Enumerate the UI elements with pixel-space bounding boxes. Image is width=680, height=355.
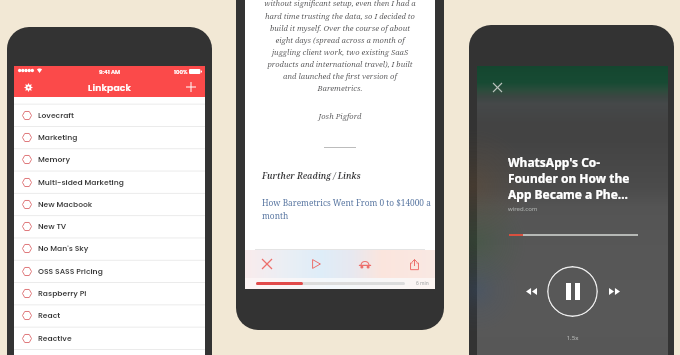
button[interactable]: Add bbox=[183, 79, 199, 95]
button[interactable]: Close bbox=[487, 77, 507, 97]
staticText: Marketing bbox=[38, 132, 78, 143]
button[interactable]: Close bbox=[256, 253, 278, 275]
button[interactable]: Car mode bbox=[354, 253, 376, 275]
staticText: Reactive bbox=[38, 333, 72, 344]
button[interactable]: Recipes bbox=[14, 349, 205, 355]
staticText: No Man's Sky bbox=[38, 243, 89, 254]
staticText: React bbox=[38, 310, 61, 321]
staticText: 6 min bbox=[416, 280, 429, 287]
button[interactable]: Reactive bbox=[14, 327, 205, 349]
button[interactable]: How Baremetrics Went From 0 to $14000 a … bbox=[262, 197, 431, 222]
staticText: New TV bbox=[38, 221, 67, 232]
button[interactable]: Pause bbox=[547, 266, 598, 317]
staticText: WhatsApp's Co- Founder on How the App Be… bbox=[508, 154, 630, 202]
staticText: Josh Pigford bbox=[245, 111, 435, 121]
staticText: 9:41 AM bbox=[99, 68, 121, 76]
button[interactable]: Raspberry Pi bbox=[14, 282, 205, 304]
staticText: Multi-sided Marketing bbox=[38, 177, 124, 188]
button[interactable]: Rewind bbox=[520, 280, 542, 302]
button[interactable]: No Man's Sky bbox=[14, 237, 205, 259]
button[interactable]: Play bbox=[305, 253, 327, 275]
button[interactable]: Fast forward bbox=[603, 280, 625, 302]
staticText: 100% bbox=[174, 68, 188, 76]
button[interactable]: OSS SASS Pricing bbox=[14, 260, 205, 282]
button[interactable]: New Macbook bbox=[14, 193, 205, 215]
staticText: Raspberry Pi bbox=[38, 288, 87, 299]
button[interactable]: Lovecraft bbox=[14, 104, 205, 126]
button[interactable]: Marketing bbox=[14, 126, 205, 148]
button[interactable]: Settings bbox=[20, 79, 36, 95]
button[interactable]: Memory bbox=[14, 148, 205, 170]
staticText: New Macbook bbox=[38, 199, 93, 210]
staticText: Memory bbox=[38, 154, 70, 165]
staticText: Further Reading / Links bbox=[262, 170, 361, 181]
staticText: Lovecraft bbox=[38, 110, 74, 121]
button[interactable]: Share bbox=[403, 253, 425, 275]
button[interactable]: React bbox=[14, 304, 205, 326]
staticText: OSS SASS Pricing bbox=[38, 266, 103, 277]
staticText: without significant setup, even then I h… bbox=[248, 0, 432, 93]
staticText: Linkpack bbox=[88, 81, 132, 94]
button[interactable]: Multi-sided Marketing bbox=[14, 171, 205, 193]
staticText: wired.com bbox=[508, 205, 538, 213]
button[interactable]: 1.5x bbox=[477, 334, 668, 342]
button[interactable]: New TV bbox=[14, 215, 205, 237]
